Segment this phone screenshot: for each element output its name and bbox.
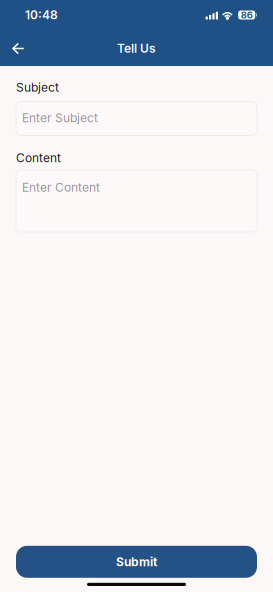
staticText: Enter Content — [22, 180, 100, 194]
staticText: 86 — [241, 9, 253, 21]
staticText: Tell Us — [117, 41, 156, 56]
button[interactable]: Back — [0, 28, 36, 66]
button[interactable]: Submit — [16, 546, 257, 578]
staticText: Content — [16, 150, 61, 165]
staticText: 10:48 — [25, 8, 58, 22]
staticText: Subject — [16, 80, 59, 94]
staticText: Submit — [116, 554, 157, 569]
staticText: Enter Subject — [22, 110, 98, 125]
